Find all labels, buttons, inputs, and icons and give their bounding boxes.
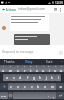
button[interactable]: b bbox=[35, 83, 42, 90]
button[interactable]: 9 bbox=[52, 65, 58, 72]
staticText: inbox@gmail.com bbox=[18, 7, 45, 11]
staticText: e bbox=[17, 68, 19, 72]
button[interactable]: Sure bbox=[39, 59, 59, 64]
staticText: h bbox=[39, 75, 42, 80]
staticText: k bbox=[51, 75, 53, 80]
button[interactable]: 3 bbox=[14, 65, 21, 72]
staticText: ?123 bbox=[1, 94, 7, 97]
staticText: n bbox=[44, 84, 47, 89]
button[interactable] bbox=[10, 14, 49, 31]
button[interactable]: g bbox=[31, 74, 37, 81]
button[interactable]: More suggestions bbox=[59, 59, 64, 64]
button[interactable]: Enter bbox=[56, 92, 64, 99]
button[interactable]: . bbox=[46, 92, 51, 99]
button[interactable]: v bbox=[28, 83, 35, 90]
staticText: i bbox=[49, 68, 50, 72]
staticText: v bbox=[31, 84, 33, 89]
staticText: s bbox=[13, 75, 15, 80]
button[interactable]: Okay bbox=[19, 59, 39, 64]
button[interactable] bbox=[14, 34, 50, 45]
staticText: 6 bbox=[36, 65, 38, 68]
button[interactable]: Back bbox=[1, 7, 6, 12]
button[interactable]: 6 bbox=[34, 65, 40, 72]
staticText: 3 bbox=[17, 65, 19, 68]
button[interactable]: Backspace bbox=[56, 83, 64, 90]
staticText: x bbox=[17, 84, 19, 89]
button[interactable]: c bbox=[21, 83, 28, 90]
button[interactable]: ?123 bbox=[0, 92, 8, 99]
staticText: d bbox=[19, 75, 22, 80]
button[interactable]: Send bbox=[58, 50, 63, 55]
staticText: u bbox=[42, 68, 45, 72]
staticText: q bbox=[2, 68, 5, 72]
button[interactable]: 8 bbox=[46, 65, 52, 72]
button[interactable]: m bbox=[49, 83, 56, 90]
button[interactable]: j bbox=[43, 74, 49, 81]
staticText: Respond to message bbox=[2, 50, 34, 54]
button[interactable]: l bbox=[55, 74, 61, 81]
button[interactable]: Emoji bbox=[8, 92, 13, 99]
staticText: a bbox=[6, 75, 8, 80]
button[interactable]: Contact avatar bbox=[2, 26, 6, 30]
button[interactable]: More options bbox=[58, 7, 63, 12]
staticText: l bbox=[58, 75, 59, 80]
button[interactable]: 1 bbox=[0, 65, 7, 72]
button[interactable]: Archive bbox=[52, 6, 58, 12]
staticText: o bbox=[54, 68, 57, 72]
staticText: 5 bbox=[30, 65, 32, 68]
staticText: w bbox=[9, 68, 12, 72]
button[interactable]: 0 bbox=[58, 65, 64, 72]
button[interactable]: , bbox=[51, 92, 56, 99]
button[interactable]: x bbox=[14, 83, 21, 90]
staticText: 4 bbox=[24, 65, 26, 68]
staticText: 2 bbox=[10, 65, 12, 68]
staticText: b bbox=[37, 84, 40, 89]
staticText: Sure bbox=[46, 60, 53, 64]
button[interactable]: 5 bbox=[28, 65, 34, 72]
staticText: 9 bbox=[55, 65, 57, 68]
button[interactable]: 4 bbox=[21, 65, 28, 72]
button[interactable]: n bbox=[42, 83, 49, 90]
staticText: y bbox=[36, 68, 38, 72]
button[interactable]: 7 bbox=[40, 65, 46, 72]
staticText: c bbox=[24, 84, 26, 89]
button[interactable]: s bbox=[10, 74, 17, 81]
button[interactable]: 2 bbox=[7, 65, 14, 72]
staticText: j bbox=[46, 75, 47, 80]
staticText: Thanks bbox=[4, 60, 15, 64]
staticText: 1 bbox=[3, 65, 5, 68]
button[interactable] bbox=[13, 92, 46, 99]
staticText: z bbox=[10, 84, 12, 89]
button[interactable]: Thanks bbox=[0, 59, 19, 64]
staticText: p bbox=[60, 68, 63, 72]
staticText: Inbox bbox=[6, 7, 16, 12]
button[interactable]: f bbox=[24, 74, 31, 81]
staticText: t bbox=[30, 68, 32, 72]
staticText: 8 bbox=[48, 65, 50, 68]
staticText: . bbox=[48, 93, 49, 98]
button[interactable]: d bbox=[17, 74, 24, 81]
staticText: Okay bbox=[25, 60, 33, 64]
staticText: r bbox=[24, 68, 26, 72]
staticText: m bbox=[51, 84, 55, 89]
button[interactable]: k bbox=[49, 74, 55, 81]
button[interactable]: h bbox=[37, 74, 43, 81]
button[interactable]: Shift bbox=[0, 83, 8, 90]
staticText: 0 bbox=[61, 65, 63, 68]
button[interactable]: z bbox=[8, 83, 14, 90]
button[interactable]: a bbox=[3, 74, 10, 81]
staticText: , bbox=[53, 93, 54, 98]
staticText: g bbox=[33, 75, 36, 80]
staticText: 7 bbox=[43, 65, 45, 68]
staticText: f bbox=[27, 75, 29, 80]
staticText: 12:30 bbox=[55, 1, 63, 5]
